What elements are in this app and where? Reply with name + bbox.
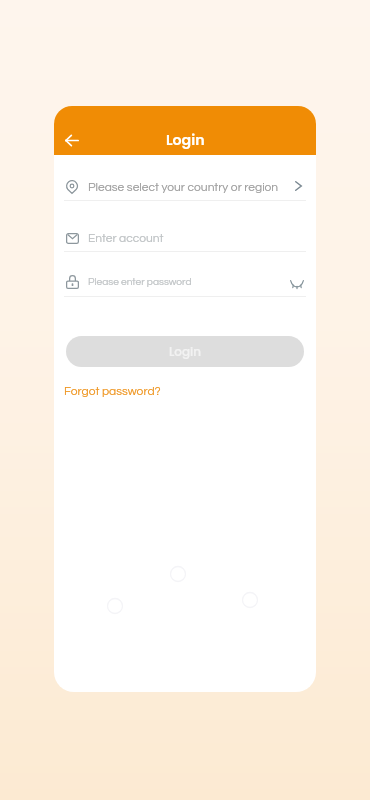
button[interactable]: Sign in with Facebook bbox=[104, 595, 126, 617]
staticText: Please enter password bbox=[88, 277, 192, 288]
staticText: Enter account bbox=[88, 232, 164, 244]
button[interactable]: Forgot password? bbox=[64, 385, 161, 397]
button[interactable]: Sign in with Google bbox=[167, 563, 189, 585]
button[interactable]: Login bbox=[66, 336, 304, 367]
staticText: Please select your country or region bbox=[88, 181, 279, 193]
button[interactable]: Please enter password bbox=[64, 267, 306, 297]
button[interactable]: Enter account bbox=[64, 223, 306, 253]
staticText: Forgot password? bbox=[64, 385, 161, 397]
button[interactable]: Select country or region bbox=[285, 173, 311, 199]
button[interactable]: Please select your country or region bbox=[64, 172, 306, 202]
button[interactable]: Back bbox=[58, 126, 86, 154]
staticText: Login bbox=[169, 343, 202, 360]
staticText: Login bbox=[166, 130, 205, 150]
button[interactable]: Show password bbox=[284, 270, 310, 296]
button[interactable]: Sign in with Apple bbox=[239, 589, 261, 611]
